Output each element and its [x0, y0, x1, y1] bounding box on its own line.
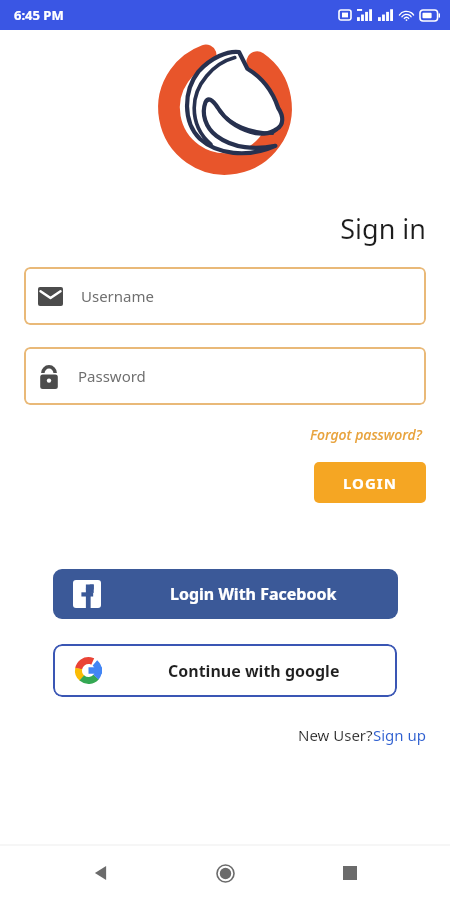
staticText: New User? [298, 725, 373, 745]
staticText: 6:45 PM [14, 6, 64, 24]
button[interactable]: LOGIN [314, 462, 426, 503]
staticText: Sign in [0, 210, 426, 247]
staticText: LOGIN [343, 473, 397, 493]
staticText: Username [81, 286, 154, 306]
staticText: Login With Facebook [170, 583, 337, 605]
button[interactable]: Forgot password? [306, 421, 426, 448]
button[interactable]: Username [24, 267, 426, 325]
button[interactable]: Home [201, 849, 249, 897]
button[interactable]: Back [77, 849, 125, 897]
button[interactable]: Recent apps [326, 849, 374, 897]
button[interactable]: Password [24, 347, 426, 405]
button[interactable]: Login With Facebook [53, 569, 398, 619]
staticText: Password [78, 366, 146, 386]
staticText: Continue with google [168, 660, 340, 682]
button[interactable]: Continue with google [53, 644, 397, 697]
button[interactable]: Sign up [373, 725, 426, 745]
